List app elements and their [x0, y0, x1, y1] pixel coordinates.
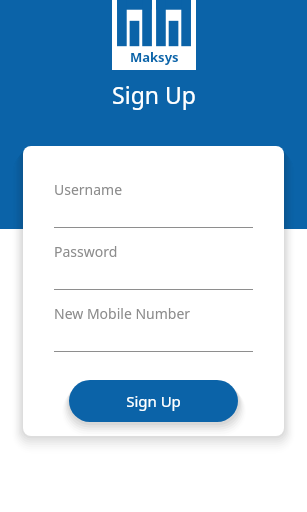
staticText: Sign Up [126, 391, 181, 411]
staticText: Username [54, 180, 123, 199]
button[interactable]: Sign Up [69, 380, 238, 422]
other: Maksys logo [112, 0, 196, 70]
button[interactable]: Password [54, 242, 253, 290]
button[interactable]: New Mobile Number [54, 304, 253, 352]
button[interactable]: Username [54, 180, 253, 228]
staticText: Password [54, 242, 118, 261]
staticText: Maksys [130, 48, 179, 66]
staticText: Sign Up [112, 79, 196, 110]
staticText: New Mobile Number [54, 304, 191, 323]
